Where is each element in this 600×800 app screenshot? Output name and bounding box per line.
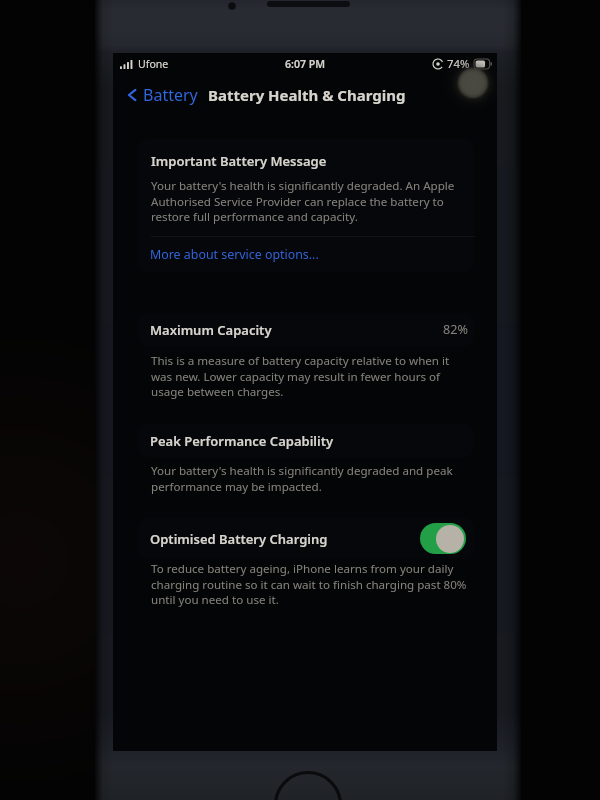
staticText: Your battery's health is significantly d… — [151, 178, 455, 224]
staticText: Ufone — [138, 57, 169, 71]
staticText: 82% — [443, 321, 468, 338]
staticText: Peak Performance Capability — [150, 432, 334, 450]
staticText: Optimised Battery Charging — [150, 530, 328, 548]
button[interactable]: More about service options... — [138, 237, 474, 272]
staticText: 74% — [447, 56, 470, 72]
staticText: Your battery's health is significantly d… — [151, 463, 453, 494]
staticText: 6:07 PM — [285, 57, 326, 71]
button[interactable]: Battery — [113, 79, 204, 111]
staticText: Battery Health & Charging — [208, 85, 406, 105]
staticText: To reduce battery ageing, iPhone learns … — [151, 561, 467, 607]
staticText: More about service options... — [150, 246, 319, 263]
staticText: Battery — [143, 84, 198, 106]
staticText: Maximum Capacity — [150, 321, 272, 339]
button[interactable]: Maximum Capacity — [138, 313, 474, 346]
button[interactable]: Peak Performance Capability — [138, 424, 474, 457]
staticText: Important Battery Message — [151, 152, 327, 170]
button[interactable]: Optimised Battery Charging toggle — [420, 523, 466, 554]
staticText: This is a measure of battery capacity re… — [151, 353, 450, 399]
